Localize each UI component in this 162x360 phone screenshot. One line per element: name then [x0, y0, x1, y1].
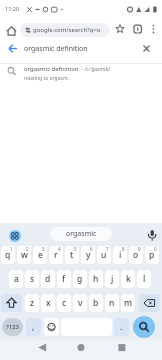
button[interactable]: b	[89, 294, 103, 312]
button[interactable]: r	[49, 246, 63, 264]
button[interactable]: orgasmic	[50, 227, 112, 241]
staticText: g	[77, 273, 83, 285]
button[interactable]	[146, 229, 158, 242]
button[interactable]	[139, 294, 160, 312]
staticText: 1	[10, 246, 13, 252]
staticText: w	[21, 249, 28, 261]
button[interactable]: google.com/search?q=o	[20, 23, 110, 37]
staticText: s	[30, 273, 35, 285]
staticText: b	[93, 297, 99, 309]
button[interactable]: z	[25, 294, 39, 312]
staticText: d	[45, 273, 51, 285]
staticText: i	[119, 249, 122, 261]
button[interactable]: u	[97, 246, 111, 264]
staticText: 3	[42, 246, 45, 252]
staticText: orgasmic definition	[24, 44, 88, 54]
staticText: 11:20	[5, 5, 20, 12]
staticText: 5	[74, 246, 77, 252]
button[interactable]: a	[9, 270, 23, 288]
staticText: y	[86, 249, 91, 261]
button[interactable]	[44, 318, 59, 336]
staticText: 8	[122, 246, 125, 252]
staticText: - /ɔːˈgazmɪk/	[79, 66, 111, 73]
button[interactable]: y	[81, 246, 95, 264]
staticText: orgasmic	[66, 229, 97, 239]
button[interactable]	[133, 316, 155, 338]
button[interactable]: e	[33, 246, 47, 264]
button[interactable]: c	[57, 294, 71, 312]
staticText: 6	[90, 246, 93, 252]
staticText: ?123	[6, 323, 19, 331]
button[interactable]: h	[89, 270, 103, 288]
staticText: 0	[154, 246, 157, 252]
button[interactable]: orgasmic definition	[0, 40, 162, 60]
staticText: x	[46, 297, 51, 309]
staticText: q	[5, 249, 11, 261]
staticText: k	[126, 273, 131, 285]
staticText: j	[111, 273, 114, 285]
button[interactable]: m	[121, 294, 135, 312]
button[interactable]: orgasmic definition	[0, 64, 162, 84]
button[interactable]: g	[73, 270, 87, 288]
button[interactable]: f	[57, 270, 71, 288]
staticText: ,	[32, 321, 35, 333]
button[interactable]: q	[1, 246, 15, 264]
button[interactable]	[1, 294, 22, 312]
staticText: f	[62, 273, 66, 285]
staticText: v	[78, 297, 83, 309]
button[interactable]: s	[25, 270, 39, 288]
staticText: a	[14, 273, 19, 285]
staticText: .	[120, 321, 123, 333]
staticText: r	[54, 249, 58, 261]
button[interactable]: x	[41, 294, 55, 312]
staticText: c	[62, 297, 67, 309]
staticText: z	[30, 297, 35, 309]
staticText: o	[133, 249, 139, 261]
button[interactable]: l	[137, 270, 151, 288]
staticText: 4	[58, 246, 61, 252]
button[interactable]	[0, 20, 162, 42]
button[interactable]: i	[113, 246, 127, 264]
button[interactable]: d	[41, 270, 55, 288]
button[interactable]: ,	[26, 318, 41, 336]
staticText: n	[109, 297, 115, 309]
staticText: t	[70, 249, 74, 261]
staticText: 2	[26, 246, 29, 252]
button[interactable]: j	[105, 270, 119, 288]
button[interactable]	[9, 230, 21, 242]
button[interactable]: w	[17, 246, 31, 264]
staticText: e	[38, 249, 43, 261]
staticText: p	[149, 249, 155, 261]
staticText: l	[143, 273, 146, 285]
staticText: m	[124, 297, 133, 309]
button[interactable]: k	[121, 270, 135, 288]
staticText: google.com/search?q=o	[33, 26, 101, 34]
staticText: orgasmic definition	[24, 65, 79, 73]
button[interactable]: n	[105, 294, 119, 312]
staticText: u	[101, 249, 107, 261]
button[interactable]: p	[145, 246, 159, 264]
staticText: 7	[106, 246, 109, 252]
button[interactable]: ?123	[2, 318, 23, 336]
button[interactable]: o	[129, 246, 143, 264]
button[interactable]: t	[65, 246, 79, 264]
button[interactable]: v	[73, 294, 87, 312]
staticText: 9	[138, 246, 141, 252]
button[interactable]: .	[114, 318, 129, 336]
staticText: h	[93, 273, 99, 285]
staticText: relating to orgasm.	[24, 75, 69, 82]
